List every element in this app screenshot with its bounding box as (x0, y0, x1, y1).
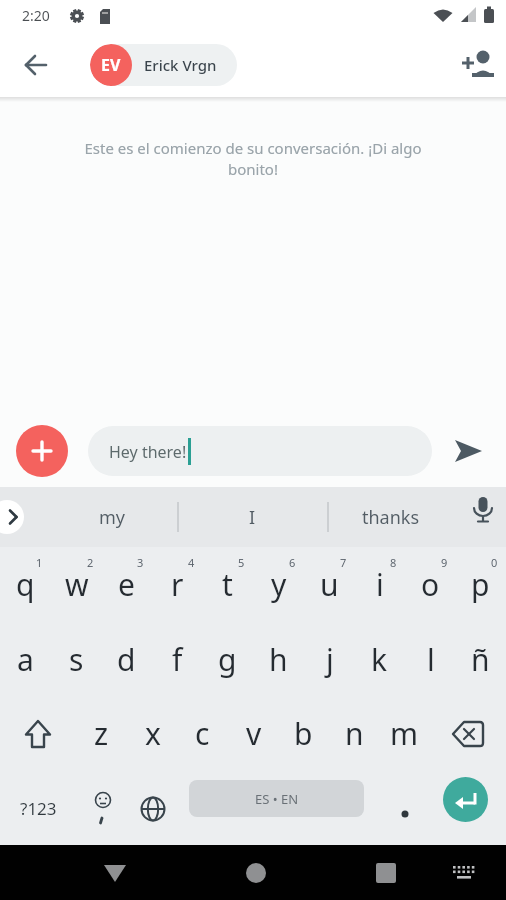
button[interactable]: s (51, 622, 102, 697)
staticText: w (65, 564, 89, 605)
button[interactable]: d (101, 622, 152, 697)
button[interactable]: my (60, 487, 164, 547)
button[interactable] (356, 845, 416, 900)
button[interactable]: ?123 (0, 771, 76, 846)
staticText: f (172, 639, 183, 680)
button[interactable]: ES • EN (189, 780, 364, 817)
staticText: ?123 (20, 797, 57, 820)
button[interactable]: w (51, 547, 102, 622)
staticText: q (16, 564, 35, 605)
button[interactable] (458, 487, 506, 547)
staticText: o (421, 564, 440, 605)
staticText: 9 (441, 555, 448, 570)
button[interactable] (440, 425, 496, 477)
button[interactable] (443, 777, 488, 822)
button[interactable]: v (228, 696, 279, 771)
button[interactable]: f (152, 622, 203, 697)
button[interactable] (0, 487, 28, 547)
staticText: m (390, 713, 419, 754)
button[interactable]: r (152, 547, 203, 622)
button[interactable]: EV (90, 44, 237, 86)
staticText: 0 (491, 555, 498, 570)
staticText: 2 (87, 555, 94, 570)
button[interactable] (76, 771, 127, 846)
staticText: d (117, 639, 136, 680)
button[interactable]: h (253, 622, 304, 697)
staticText: 1 (36, 555, 43, 570)
staticText: a (17, 639, 34, 680)
button[interactable]: k (354, 622, 405, 697)
button[interactable]: ñ (455, 622, 506, 697)
button[interactable]: y (253, 547, 304, 622)
staticText: l (427, 639, 435, 680)
button[interactable] (0, 696, 76, 771)
button[interactable]: b (278, 696, 329, 771)
staticText: y (271, 564, 287, 605)
staticText: Hey there! (109, 441, 187, 463)
button[interactable] (379, 771, 430, 846)
staticText: e (118, 564, 135, 605)
staticText: n (345, 713, 364, 754)
staticText: u (320, 564, 339, 605)
staticText: 7 (340, 555, 347, 570)
button[interactable] (440, 845, 488, 900)
staticText: 5 (238, 555, 245, 570)
button[interactable]: x (127, 696, 178, 771)
staticText: my (99, 505, 126, 530)
staticText: 4 (188, 555, 195, 570)
button[interactable] (226, 845, 286, 900)
button[interactable] (16, 425, 68, 477)
staticText: k (371, 639, 388, 680)
button[interactable]: thanks (336, 487, 446, 547)
button[interactable]: c (177, 696, 228, 771)
staticText: ES • EN (255, 790, 299, 808)
staticText: thanks (362, 505, 420, 530)
staticText: b (294, 713, 313, 754)
staticText: Este es el comienzo de su conversación. … (0, 138, 506, 180)
button[interactable]: o (405, 547, 456, 622)
staticText: 8 (390, 555, 397, 570)
button[interactable]: m (379, 696, 430, 771)
staticText: i (376, 564, 384, 605)
button[interactable]: p (455, 547, 506, 622)
staticText: t (222, 564, 233, 605)
button[interactable] (430, 696, 506, 771)
staticText: z (94, 713, 109, 754)
button[interactable] (8, 33, 64, 97)
staticText: 2:20 (22, 6, 50, 25)
button[interactable]: j (304, 622, 355, 697)
staticText: EV (101, 54, 121, 76)
staticText: g (218, 639, 237, 680)
button[interactable] (85, 845, 145, 900)
staticText: x (145, 713, 161, 754)
button[interactable]: e (101, 547, 152, 622)
button[interactable]: n (329, 696, 380, 771)
staticText: I (249, 505, 256, 530)
staticText: v (246, 713, 262, 754)
button[interactable]: t (202, 547, 253, 622)
button[interactable] (450, 33, 506, 97)
button[interactable]: q (0, 547, 51, 622)
staticText: 3 (137, 555, 144, 570)
staticText: r (171, 564, 184, 605)
button[interactable]: g (202, 622, 253, 697)
button[interactable]: i (354, 547, 405, 622)
button[interactable]: Hey there! (88, 426, 432, 476)
staticText: ñ (471, 639, 490, 680)
staticText: h (269, 639, 288, 680)
button[interactable]: l (405, 622, 456, 697)
button[interactable]: z (76, 696, 127, 771)
staticText: p (471, 564, 490, 605)
staticText: s (69, 639, 84, 680)
staticText: c (195, 713, 210, 754)
button[interactable]: u (304, 547, 355, 622)
button[interactable] (127, 771, 178, 846)
staticText: j (326, 639, 334, 680)
staticText: 6 (289, 555, 296, 570)
staticText: Erick Vrgn (144, 55, 217, 75)
button[interactable]: I (200, 487, 304, 547)
button[interactable]: a (0, 622, 51, 697)
